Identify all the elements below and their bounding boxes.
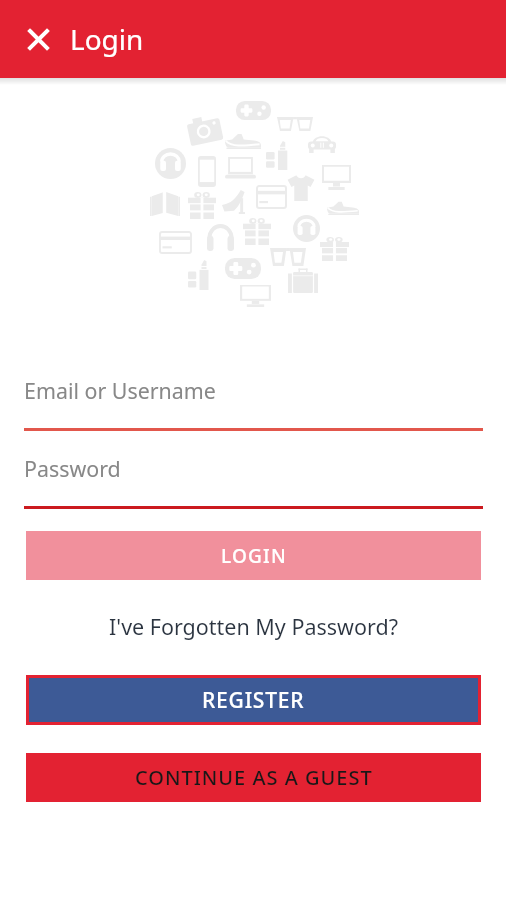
button[interactable]: REGISTER (29, 678, 478, 722)
button[interactable]: LOGIN (26, 531, 481, 580)
staticText: CONTINUE AS A GUEST (135, 764, 373, 791)
button[interactable]: Email or Username (24, 376, 483, 431)
button[interactable]: Close (16, 17, 60, 61)
staticText: I've Forgotten My Password? (109, 612, 398, 640)
button[interactable]: I've Forgotten My Password? (101, 608, 406, 644)
button[interactable]: CONTINUE AS A GUEST (26, 753, 481, 802)
staticText: LOGIN (221, 543, 287, 569)
staticText: Email or Username (24, 376, 216, 405)
staticText: Password (24, 454, 121, 483)
staticText: Login (70, 20, 144, 58)
button[interactable]: Password (24, 454, 483, 510)
staticText: REGISTER (202, 686, 305, 715)
